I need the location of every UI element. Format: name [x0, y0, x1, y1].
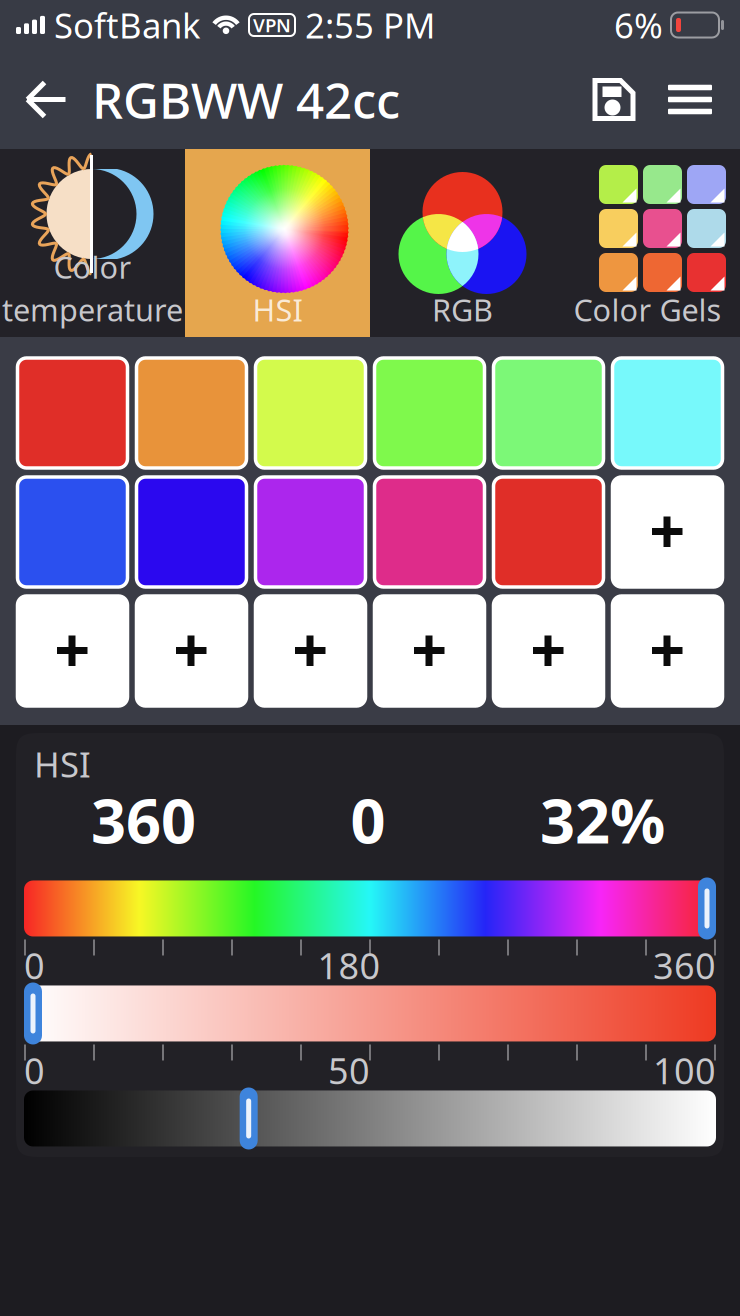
button[interactable]: RGB	[370, 149, 555, 337]
button[interactable]	[255, 477, 365, 587]
staticText: 0	[24, 1046, 45, 1094]
staticText: Color	[53, 247, 131, 287]
button[interactable]	[136, 596, 246, 706]
button[interactable]	[612, 596, 722, 706]
staticText: temperature	[2, 289, 183, 330]
button[interactable]: Save	[576, 50, 652, 149]
staticText: HSI	[252, 289, 302, 330]
staticText: 0	[24, 941, 45, 989]
button[interactable]: Color	[0, 149, 185, 337]
button[interactable]	[136, 477, 246, 587]
button[interactable]	[493, 358, 603, 468]
staticText: 360	[91, 779, 196, 860]
button[interactable]	[17, 358, 127, 468]
staticText: HSI	[34, 741, 91, 787]
staticText: 2:55 PM	[305, 2, 435, 48]
staticText: VPN	[253, 13, 291, 37]
staticText: 32%	[540, 779, 665, 860]
staticText: 6%	[614, 2, 663, 48]
button[interactable]	[255, 596, 365, 706]
staticText: 50	[328, 1046, 370, 1094]
button[interactable]	[17, 596, 127, 706]
button[interactable]	[136, 358, 246, 468]
button[interactable]: Color Gels	[555, 149, 740, 337]
staticText: 0	[350, 779, 385, 860]
staticText: 100	[653, 1046, 716, 1094]
button[interactable]	[374, 358, 484, 468]
button[interactable]	[374, 596, 484, 706]
staticText: 180	[317, 941, 380, 989]
button[interactable]: Back	[10, 50, 82, 149]
button[interactable]	[255, 358, 365, 468]
button[interactable]	[17, 477, 127, 587]
button[interactable]	[374, 477, 484, 587]
button[interactable]	[612, 477, 722, 587]
button[interactable]	[493, 596, 603, 706]
staticText: RGB	[432, 289, 493, 330]
staticText: 360	[653, 941, 716, 989]
staticText: Color Gels	[573, 289, 721, 330]
button[interactable]	[493, 477, 603, 587]
button[interactable]: Menu	[652, 50, 728, 149]
staticText: RGBWW 42cc	[92, 67, 400, 132]
staticText: SoftBank	[54, 2, 201, 48]
button[interactable]: HSI	[185, 149, 370, 337]
button[interactable]	[612, 358, 722, 468]
